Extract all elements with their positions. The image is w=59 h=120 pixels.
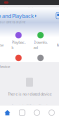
- button[interactable]: Playback: [11, 32, 25, 50]
- staticText: Cloud: [0, 62, 1, 68]
- button[interactable]: Me: [44, 110, 59, 115]
- button[interactable]: Preview: [0, 35, 3, 47]
- button[interactable]: Alarm: [55, 35, 59, 47]
- button[interactable]: Messages: [29, 110, 44, 115]
- button[interactable]: Live and Playback: [0, 12, 37, 19]
- staticText: Alarm: [56, 42, 59, 47]
- button[interactable]: Cloud: [0, 55, 3, 68]
- staticText: Playback: [11, 40, 25, 50]
- button[interactable]: More: [55, 55, 59, 68]
- button[interactable]: Split screen layout: [56, 12, 59, 19]
- button[interactable]: Tools: [33, 55, 47, 68]
- button[interactable]: Share: [11, 55, 25, 68]
- staticText: Copyright © Device Cloud: [11, 104, 47, 108]
- staticText: Preview: [0, 42, 3, 47]
- button[interactable]: Page settings: [2, 6, 10, 12]
- staticText: Watch your cameras anytime: [0, 20, 26, 24]
- staticText: My Device: [0, 64, 10, 69]
- button[interactable]: Home: [0, 110, 15, 116]
- button[interactable]: Devices: [15, 110, 30, 115]
- staticText: open.app.link: [12, 6, 34, 12]
- staticText: AA: [3, 6, 9, 12]
- staticText: Live and Playback: [0, 12, 34, 19]
- staticText: Download: [33, 40, 47, 50]
- staticText: There is no related device: [7, 91, 51, 96]
- button[interactable]: Download: [33, 32, 47, 50]
